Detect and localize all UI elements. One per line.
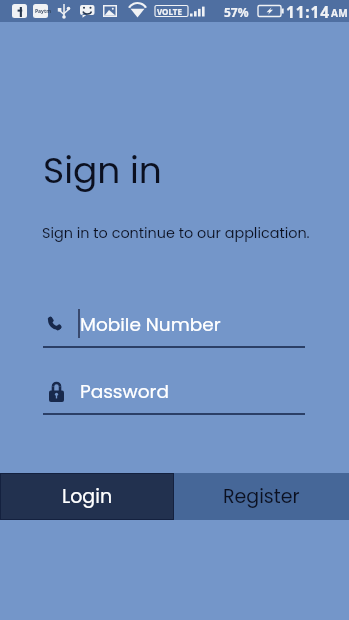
staticText: Login — [62, 483, 113, 510]
button[interactable]: Login — [0, 473, 174, 520]
staticText: Mobile Number — [80, 312, 221, 338]
staticText: 57% — [224, 4, 249, 20]
staticText: Password — [80, 379, 169, 405]
staticText: Paytm — [35, 8, 52, 15]
staticText: Sign in to continue to our application. — [42, 223, 310, 243]
button[interactable]: Register — [174, 473, 349, 520]
button[interactable]: Password input — [30, 370, 320, 418]
staticText: AM — [331, 6, 349, 20]
staticText: VOLTE — [157, 6, 182, 17]
button[interactable]: Mobile Number input — [30, 303, 320, 351]
staticText: Register — [223, 483, 300, 510]
staticText: Sign in — [43, 145, 162, 195]
staticText: 11:14 — [286, 1, 330, 22]
